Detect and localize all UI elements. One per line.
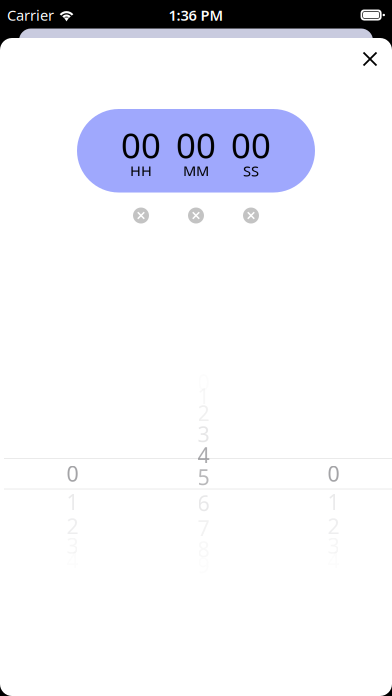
staticText: 1 [327,488,339,516]
staticText: 00 [121,122,161,168]
staticText: 3 [197,420,209,448]
button[interactable]: Clear [234,201,268,229]
staticText: MM [183,161,209,180]
staticText: 1 [197,382,209,410]
staticText: 0 [327,459,339,487]
staticText: 1 [66,488,78,516]
staticText: 3 [66,531,78,560]
staticText: 2 [327,512,339,540]
button[interactable]: Close [348,37,392,81]
staticText: 00 [176,122,216,168]
button[interactable]: Clear [179,201,213,229]
staticText: 4 [197,441,209,469]
staticText: SS [243,161,259,180]
staticText: 2 [66,512,78,540]
staticText: 0 [66,459,78,487]
staticText: 2 [197,399,209,427]
staticText: HH [130,161,152,180]
staticText: 00 [231,122,271,168]
staticText: 3 [327,531,339,560]
staticText: Carrier [7,5,54,25]
staticText: 7 [197,514,209,542]
staticText: 1:36 PM [168,5,223,25]
button[interactable]: Clear [124,201,158,229]
staticText: 5 [197,463,209,491]
staticText: 6 [197,489,209,517]
